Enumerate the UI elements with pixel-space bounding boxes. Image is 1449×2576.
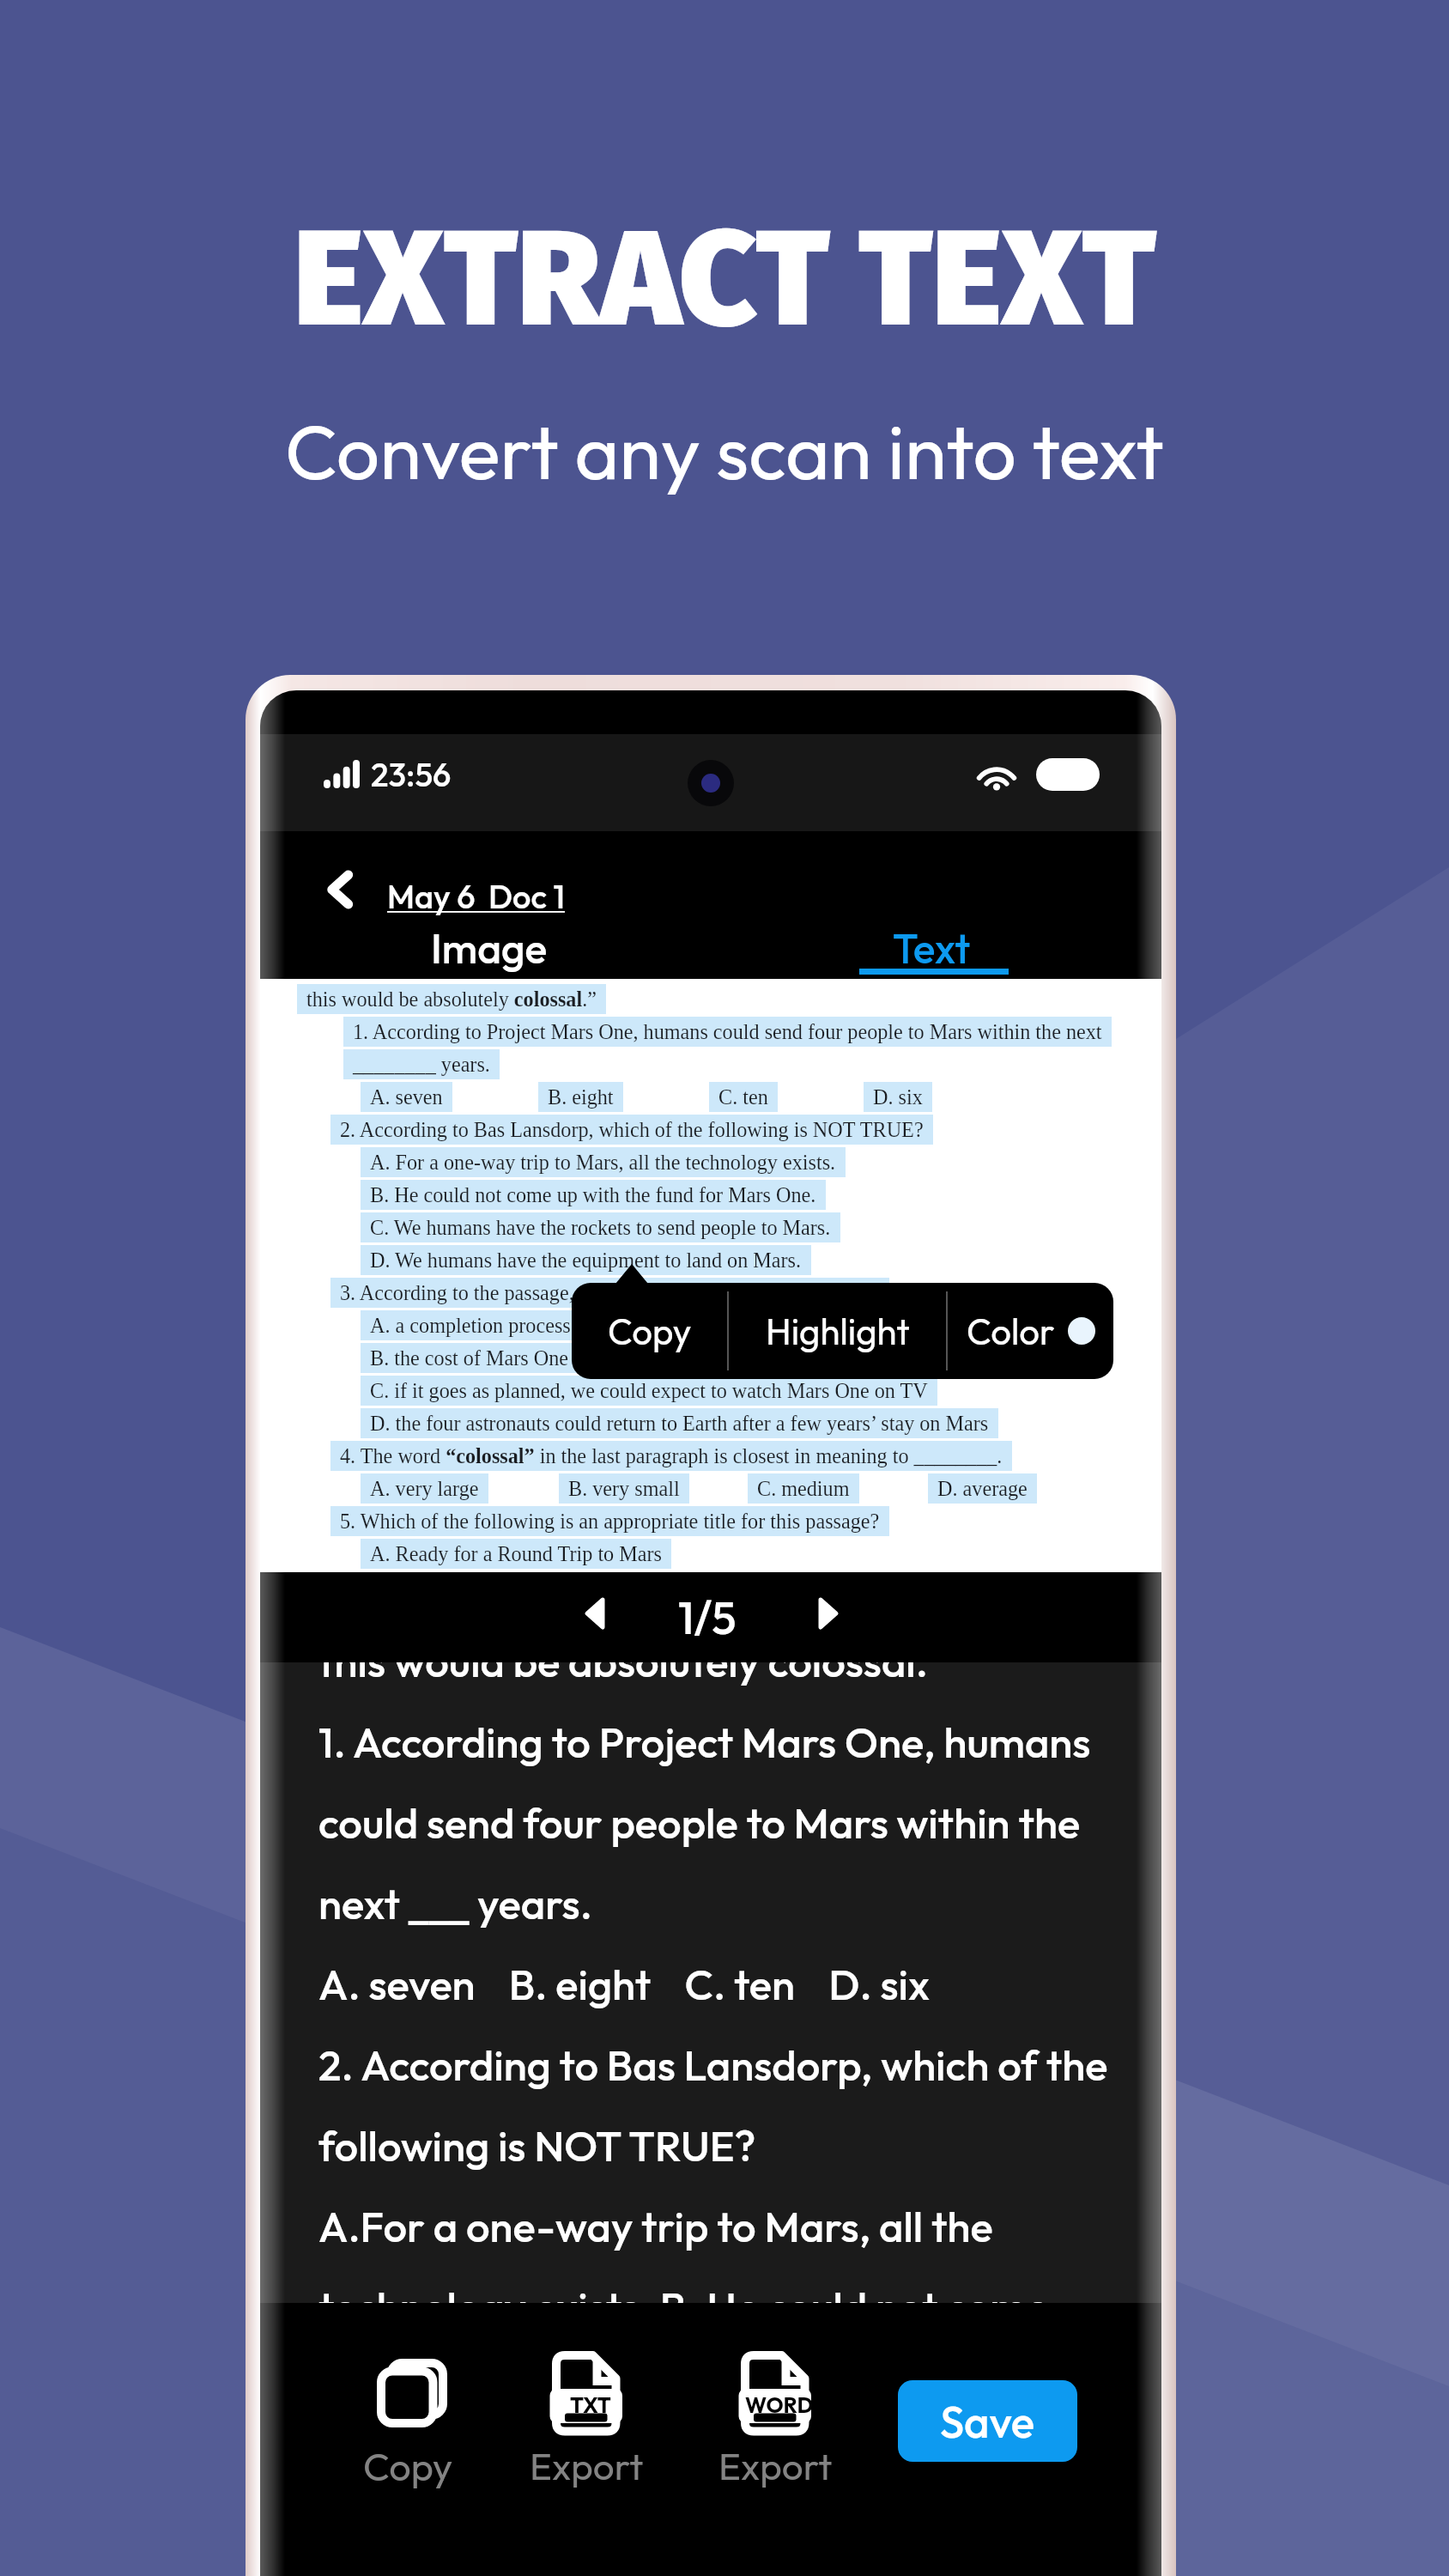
staticText: 23:56 xyxy=(371,754,452,795)
button[interactable]: Save xyxy=(898,2380,1077,2462)
staticText: Text xyxy=(893,922,971,974)
staticText: 1/5 xyxy=(678,1589,737,1646)
button[interactable]: Next page xyxy=(796,1583,861,1644)
staticText: A. seven B. eight C. ten D. six xyxy=(318,1958,930,2011)
staticText: D. the four astronauts could return to E… xyxy=(370,1412,989,1435)
staticText: this would be absolutely colossal.” xyxy=(306,987,597,1011)
staticText: Copy xyxy=(363,2442,453,2491)
staticText: C. We humans have the rockets to send pe… xyxy=(370,1216,831,1239)
staticText: A.For a one-way trip to Mars, all the xyxy=(318,2200,993,2253)
staticText: 2. According to Bas Lansdorp, which of t… xyxy=(340,1118,924,1141)
staticText: Convert any scan into text xyxy=(285,403,1164,499)
staticText: Color xyxy=(967,1309,1055,1354)
staticText: Export xyxy=(530,2442,644,2489)
staticText: Export xyxy=(718,2442,833,2489)
staticText: Copy xyxy=(608,1309,692,1354)
staticText: EXTRACT TEXT xyxy=(294,199,1156,360)
staticText: technology exists. B. He could not come xyxy=(318,2281,1049,2303)
staticText: D. average xyxy=(937,1477,1028,1500)
button[interactable]: TXT xyxy=(518,2346,724,2518)
staticText: 1. According to Project Mars One, humans xyxy=(318,1716,1091,1769)
staticText: 5. Which of the following is an appropri… xyxy=(340,1510,880,1533)
button[interactable]: May 6 Doc 1 xyxy=(387,876,565,917)
staticText: WORD xyxy=(745,2391,814,2419)
staticText: C. medium xyxy=(757,1477,850,1500)
staticText: 3. According to the passage, what is men… xyxy=(340,1281,880,1304)
staticText: Image xyxy=(431,922,548,974)
staticText: 4. The word “colossal” in the last parag… xyxy=(340,1444,1003,1467)
staticText: following is NOT TRUE? xyxy=(318,2119,756,2172)
staticText: A. very large xyxy=(370,1477,479,1500)
staticText: this would be absolutely colossal. xyxy=(318,1662,928,1688)
button[interactable]: WORD xyxy=(706,2346,912,2518)
button[interactable]: Copy xyxy=(343,2346,549,2518)
button[interactable]: Back xyxy=(308,863,372,916)
staticText: D. We humans have the equipment to land … xyxy=(370,1249,802,1272)
staticText: C. ten xyxy=(718,1085,768,1109)
button[interactable]: Highlight xyxy=(729,1283,946,1379)
button[interactable]: Color xyxy=(948,1283,1113,1379)
staticText: A. seven xyxy=(370,1085,443,1109)
button[interactable]: Image xyxy=(335,925,644,988)
staticText: A. For a one-way trip to Mars, all the t… xyxy=(370,1151,836,1174)
staticText: A. a completion process of the first hum… xyxy=(370,1314,794,1337)
staticText: B. very small xyxy=(568,1477,680,1500)
button[interactable]: Copy xyxy=(572,1283,727,1379)
staticText: A. Ready for a Round Trip to Mars xyxy=(370,1542,662,1565)
staticText: C. if it goes as planned, we could expec… xyxy=(370,1379,928,1402)
button[interactable]: Text xyxy=(779,916,1088,980)
staticText: Save xyxy=(940,2394,1035,2449)
staticText: could send four people to Mars within th… xyxy=(318,1796,1081,1850)
button[interactable]: Previous page xyxy=(562,1583,627,1644)
staticText: ________ years. xyxy=(353,1053,490,1076)
staticText: 1. According to Project Mars One, humans… xyxy=(353,1020,1102,1043)
staticText: B. He could not come up with the fund fo… xyxy=(370,1183,816,1206)
staticText: next ___ years. xyxy=(318,1877,592,1930)
staticText: Highlight xyxy=(766,1309,910,1354)
staticText: B. eight xyxy=(548,1085,614,1109)
staticText: 2. According to Bas Lansdorp, which of t… xyxy=(318,2038,1108,2092)
staticText: B. the cost of Mars One will be far beyo… xyxy=(370,1346,827,1370)
staticText: D. six xyxy=(873,1085,923,1109)
staticText: TXT xyxy=(570,2391,611,2419)
